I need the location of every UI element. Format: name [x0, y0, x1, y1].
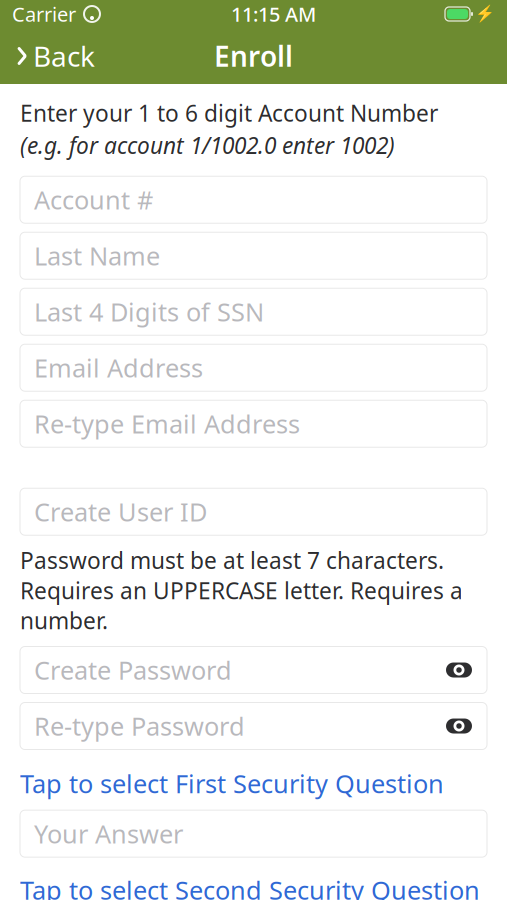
staticText: Your Answer — [34, 817, 183, 850]
staticText: Re-type Password — [34, 709, 245, 743]
staticText: Last Name — [34, 239, 160, 272]
button[interactable]: Re-type Email Address — [20, 400, 487, 447]
staticText: Re-type Email Address — [34, 407, 300, 440]
button[interactable]: Email Address — [20, 344, 487, 391]
staticText: Last 4 Digits of SSN — [34, 295, 264, 328]
staticText: Tap to select Second Security Question — [20, 873, 480, 900]
button[interactable]: Last Name — [20, 232, 487, 279]
staticText: (e.g. for account 1/1002.0 enter 1002) — [20, 130, 395, 160]
button[interactable]: Last 4 Digits of SSN — [20, 288, 487, 335]
button[interactable]: Back — [0, 29, 111, 83]
button[interactable]: Create User ID — [20, 488, 487, 535]
staticText: Email Address — [34, 351, 203, 384]
staticText: Back — [33, 37, 95, 75]
staticText: ⚡ — [475, 5, 495, 23]
staticText: 11:15 AM — [231, 1, 316, 27]
staticText: Password must be at least 7 characters. … — [20, 545, 463, 635]
staticText: Enroll — [214, 37, 293, 75]
button[interactable]: Tap to select First Security Question — [20, 762, 487, 804]
staticText: Account # — [34, 183, 153, 216]
staticText: Create Password — [34, 653, 232, 687]
button[interactable]: Tap to select Second Security Question — [20, 869, 487, 900]
button[interactable]: Re-type Password — [20, 702, 487, 749]
button[interactable]: Create Password — [20, 646, 487, 693]
button[interactable]: Your Answer — [20, 810, 487, 857]
staticText: Create User ID — [34, 495, 207, 528]
button[interactable]: Account # — [20, 176, 487, 223]
staticText: Carrier — [12, 1, 76, 27]
staticText: Tap to select First Security Question — [20, 766, 444, 800]
staticText: Enter your 1 to 6 digit Account Number — [20, 98, 438, 128]
